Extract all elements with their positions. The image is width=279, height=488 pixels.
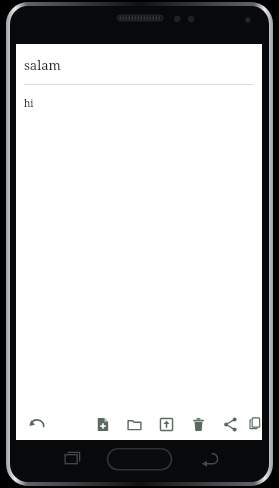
button[interactable]: Undo — [22, 409, 50, 439]
button[interactable]: New document — [88, 409, 116, 439]
button[interactable]: Open folder — [120, 409, 148, 439]
button[interactable]: Share — [216, 409, 244, 439]
staticText: salam — [24, 56, 61, 74]
button[interactable]: Export — [152, 409, 180, 439]
button[interactable]: Delete — [184, 409, 212, 439]
button[interactable]: Copy — [248, 409, 262, 439]
staticText: hi — [24, 96, 34, 110]
button[interactable]: salam — [16, 44, 262, 84]
